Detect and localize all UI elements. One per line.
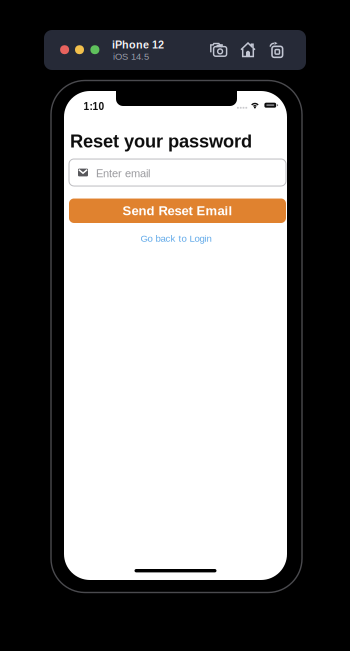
staticText: Go back to Login [140,233,211,244]
button[interactable]: Screenshot [208,40,225,55]
button[interactable]: Go back to Login [67,231,284,246]
staticText: iPhone 12 [112,39,164,51]
button[interactable]: Home [240,42,256,58]
staticText: iOS 14.5 [113,51,149,62]
staticText: Enter email [96,167,150,180]
staticText: 1:10 [84,101,105,112]
button[interactable]: Rotate device [268,41,281,56]
staticText: Reset your password [70,131,252,151]
button[interactable]: Send Reset Email [69,198,286,223]
staticText: Send Reset Email [122,203,232,218]
